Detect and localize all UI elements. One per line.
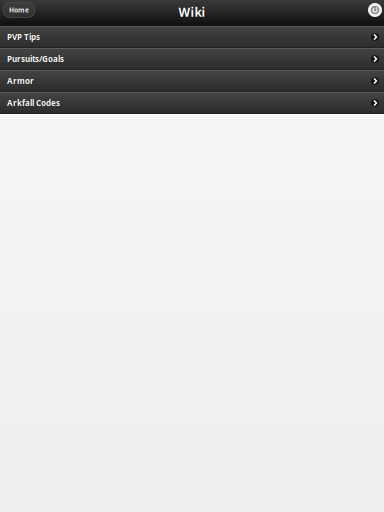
staticText: Arkfall Codes: [7, 98, 60, 108]
button[interactable]: Arkfall Codes: [0, 92, 384, 114]
staticText: PVP Tips: [7, 32, 40, 42]
staticText: Armor: [7, 76, 34, 86]
button[interactable]: Home: [3, 2, 35, 17]
button[interactable]: Refresh: [368, 3, 382, 17]
staticText: Pursuits/Goals: [7, 54, 64, 64]
button[interactable]: Pursuits/Goals: [0, 48, 384, 70]
button[interactable]: PVP Tips: [0, 26, 384, 48]
staticText: Wiki: [178, 4, 205, 20]
staticText: Home: [9, 6, 29, 14]
button[interactable]: Armor: [0, 70, 384, 92]
